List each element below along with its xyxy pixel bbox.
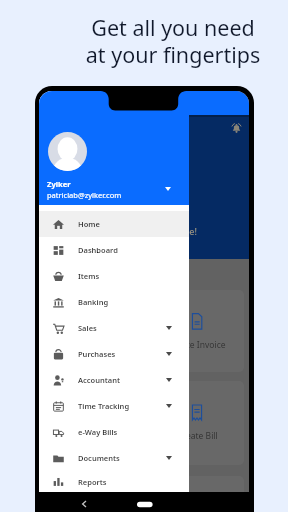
button[interactable]: Create Bill xyxy=(150,381,244,465)
staticText: e-Way Bills xyxy=(78,427,118,437)
staticText: patriclab@zylker.com xyxy=(47,190,122,200)
staticText: Create Invoice xyxy=(168,339,226,351)
staticText: Accountant xyxy=(78,375,121,385)
button[interactable]: Dashboard xyxy=(39,237,189,263)
button[interactable]: Items xyxy=(39,263,189,289)
button[interactable]: e-Way Bills xyxy=(39,419,189,445)
staticText: Zylker xyxy=(47,179,71,189)
button[interactable]: Documents xyxy=(39,445,189,471)
button[interactable]: Notifications xyxy=(231,123,242,134)
staticText: Create Bill xyxy=(177,430,218,442)
staticText: Get all you need at your fingertips xyxy=(29,13,288,70)
button[interactable] xyxy=(150,476,244,492)
button[interactable]: Create Invoice xyxy=(150,290,244,372)
staticText: Banking xyxy=(78,297,109,307)
staticText: Documents xyxy=(78,453,120,463)
button[interactable]: Purchases xyxy=(39,341,189,367)
staticText: Home xyxy=(78,219,100,229)
button[interactable]: Banking xyxy=(39,289,189,315)
button[interactable]: Time Tracking xyxy=(39,393,189,419)
button[interactable]: Accountant xyxy=(39,367,189,393)
staticText: Purchases xyxy=(78,349,116,359)
button[interactable]: Switch account xyxy=(165,187,171,191)
staticText: Time Tracking xyxy=(78,401,130,411)
button[interactable]: Home xyxy=(39,211,189,237)
button[interactable]: Sales xyxy=(39,315,189,341)
staticText: Welcome! xyxy=(155,225,197,237)
staticText: Dashboard xyxy=(78,245,118,255)
staticText: Sales xyxy=(78,323,97,333)
staticText: Items xyxy=(78,271,100,281)
button[interactable]: Reports xyxy=(39,471,189,492)
staticText: Reports xyxy=(78,477,107,487)
